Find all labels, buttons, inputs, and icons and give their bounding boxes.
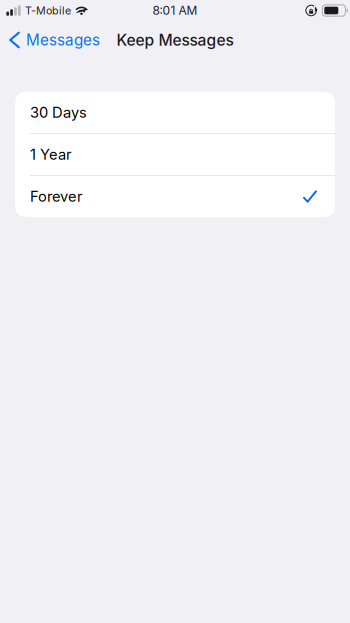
staticText: 1 Year: [30, 146, 72, 163]
staticText: Forever: [30, 188, 83, 205]
button[interactable]: 30 Days: [15, 92, 335, 133]
button[interactable]: Forever: [15, 176, 335, 217]
staticText: T-Mobile: [25, 4, 71, 17]
staticText: 30 Days: [30, 104, 87, 121]
staticText: 8:01 AM: [152, 3, 197, 18]
button[interactable]: Messages: [0, 25, 108, 55]
staticText: Messages: [26, 31, 100, 49]
button[interactable]: 1 Year: [15, 134, 335, 175]
staticText: Keep Messages: [116, 31, 233, 49]
